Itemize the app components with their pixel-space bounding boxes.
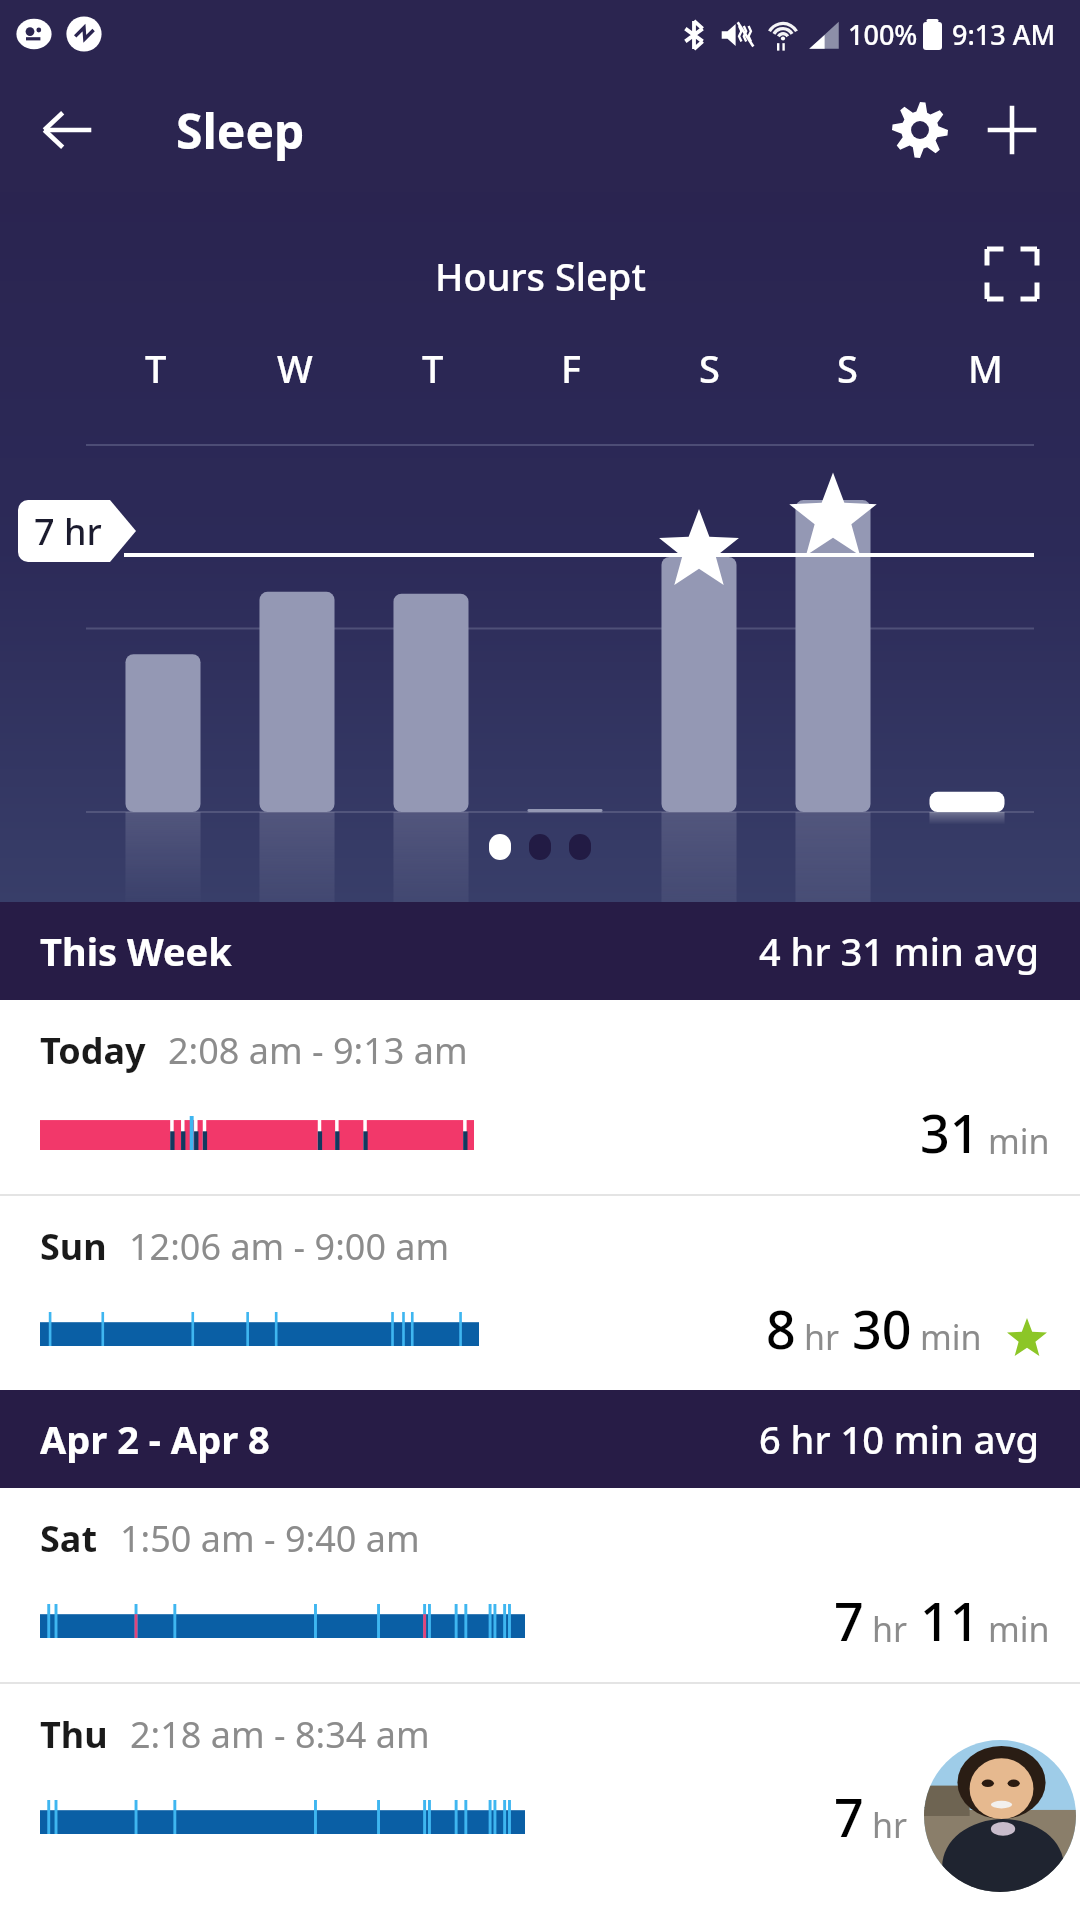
staticText: 30 <box>852 1293 912 1364</box>
button[interactable]: Thu <box>0 1684 1080 1878</box>
staticText: hr <box>872 1802 908 1848</box>
staticText: hr <box>872 1606 908 1652</box>
staticText: 11 <box>920 1585 980 1656</box>
staticText: S <box>699 342 720 394</box>
button[interactable]: Back <box>24 87 110 173</box>
button[interactable]: Hours Slept <box>0 192 1080 902</box>
staticText: 8 <box>766 1293 796 1364</box>
staticText: 7 <box>834 1585 864 1656</box>
staticText: Today <box>40 1026 146 1075</box>
staticText: 11 <box>920 1781 980 1852</box>
button[interactable] <box>569 834 591 860</box>
staticText: Hours Slept <box>435 250 646 302</box>
staticText: Thu <box>40 1710 108 1759</box>
staticText: min <box>988 1802 1050 1848</box>
staticText: T <box>145 342 167 394</box>
staticText: 7 hr <box>34 507 102 556</box>
staticText: M <box>968 342 1003 394</box>
staticText: 7 <box>834 1781 864 1852</box>
staticText: 9:13 AM <box>952 16 1056 53</box>
staticText: Sat <box>40 1514 98 1563</box>
staticText: Sun <box>40 1222 107 1271</box>
staticText: 4 hr 31 min avg <box>759 925 1040 977</box>
button[interactable] <box>489 834 511 860</box>
staticText: This Week <box>40 925 232 977</box>
staticText: 6 hr 10 min avg <box>759 1413 1040 1465</box>
button[interactable] <box>529 834 551 860</box>
button[interactable]: Add sleep log <box>966 84 1058 176</box>
staticText: F <box>561 342 582 394</box>
staticText: W <box>277 342 313 394</box>
button[interactable]: Apr 2 - Apr 8 <box>0 1390 1080 1488</box>
staticText: S <box>837 342 858 394</box>
staticText: 12:06 am - 9:00 am <box>129 1222 450 1271</box>
staticText: min <box>988 1606 1050 1652</box>
button[interactable]: Sun <box>0 1196 1080 1390</box>
button[interactable]: Fullscreen <box>974 236 1050 312</box>
staticText: 2:18 am - 8:34 am <box>130 1710 430 1759</box>
staticText: T <box>422 342 444 394</box>
button[interactable]: Sat <box>0 1488 1080 1682</box>
staticText: 2:08 am - 9:13 am <box>168 1026 468 1075</box>
button[interactable]: This Week <box>0 902 1080 1000</box>
staticText: min <box>920 1314 982 1360</box>
staticText: 100% <box>848 16 918 53</box>
staticText: Sleep <box>176 98 305 163</box>
staticText: min <box>988 1118 1050 1164</box>
staticText: 31 <box>920 1097 980 1168</box>
staticText: Apr 2 - Apr 8 <box>40 1413 270 1465</box>
staticText: 1:50 am - 9:40 am <box>120 1514 420 1563</box>
button[interactable]: Settings <box>874 84 966 176</box>
button[interactable]: Profile photo <box>924 1740 1076 1892</box>
staticText: hr <box>804 1314 840 1360</box>
button[interactable]: Today <box>0 1000 1080 1194</box>
